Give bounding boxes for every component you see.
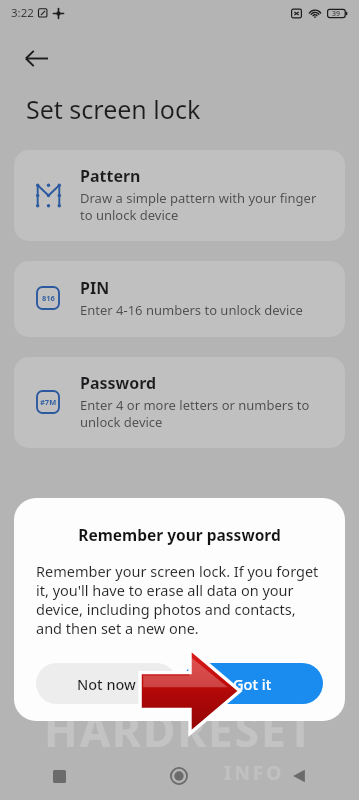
staticText: Set screen lock bbox=[26, 92, 201, 126]
button[interactable]: Pattern bbox=[14, 150, 345, 241]
button[interactable]: 816 bbox=[14, 261, 345, 337]
staticText: Draw a simple pattern with your finger t… bbox=[80, 189, 327, 224]
staticText: PIN bbox=[80, 277, 110, 299]
button[interactable]: Home bbox=[119, 752, 239, 800]
staticText: Enter 4-16 numbers to unlock device bbox=[80, 301, 303, 319]
staticText: Got it bbox=[233, 674, 272, 694]
staticText: Remember your password bbox=[36, 524, 323, 545]
staticText: 3:22 bbox=[11, 5, 34, 21]
staticText: Not now bbox=[77, 674, 136, 694]
staticText: Password bbox=[80, 372, 157, 394]
button[interactable]: Back bbox=[239, 752, 359, 800]
staticText: Remember your screen lock. If you forget… bbox=[36, 561, 323, 639]
staticText: 39 bbox=[332, 9, 341, 19]
button[interactable]: #7M bbox=[14, 357, 345, 448]
button[interactable]: Recent apps bbox=[0, 752, 119, 800]
button[interactable]: Back bbox=[14, 36, 58, 80]
staticText: 816 bbox=[42, 293, 55, 303]
staticText: HARDRESET bbox=[44, 700, 315, 760]
button[interactable]: Not now bbox=[36, 663, 177, 704]
staticText: Enter 4 or more letters or numbers to un… bbox=[80, 396, 327, 431]
button[interactable]: Got it bbox=[182, 663, 323, 704]
staticText: #7M bbox=[40, 397, 57, 407]
staticText: INFO bbox=[224, 760, 285, 786]
staticText: Pattern bbox=[80, 165, 141, 187]
